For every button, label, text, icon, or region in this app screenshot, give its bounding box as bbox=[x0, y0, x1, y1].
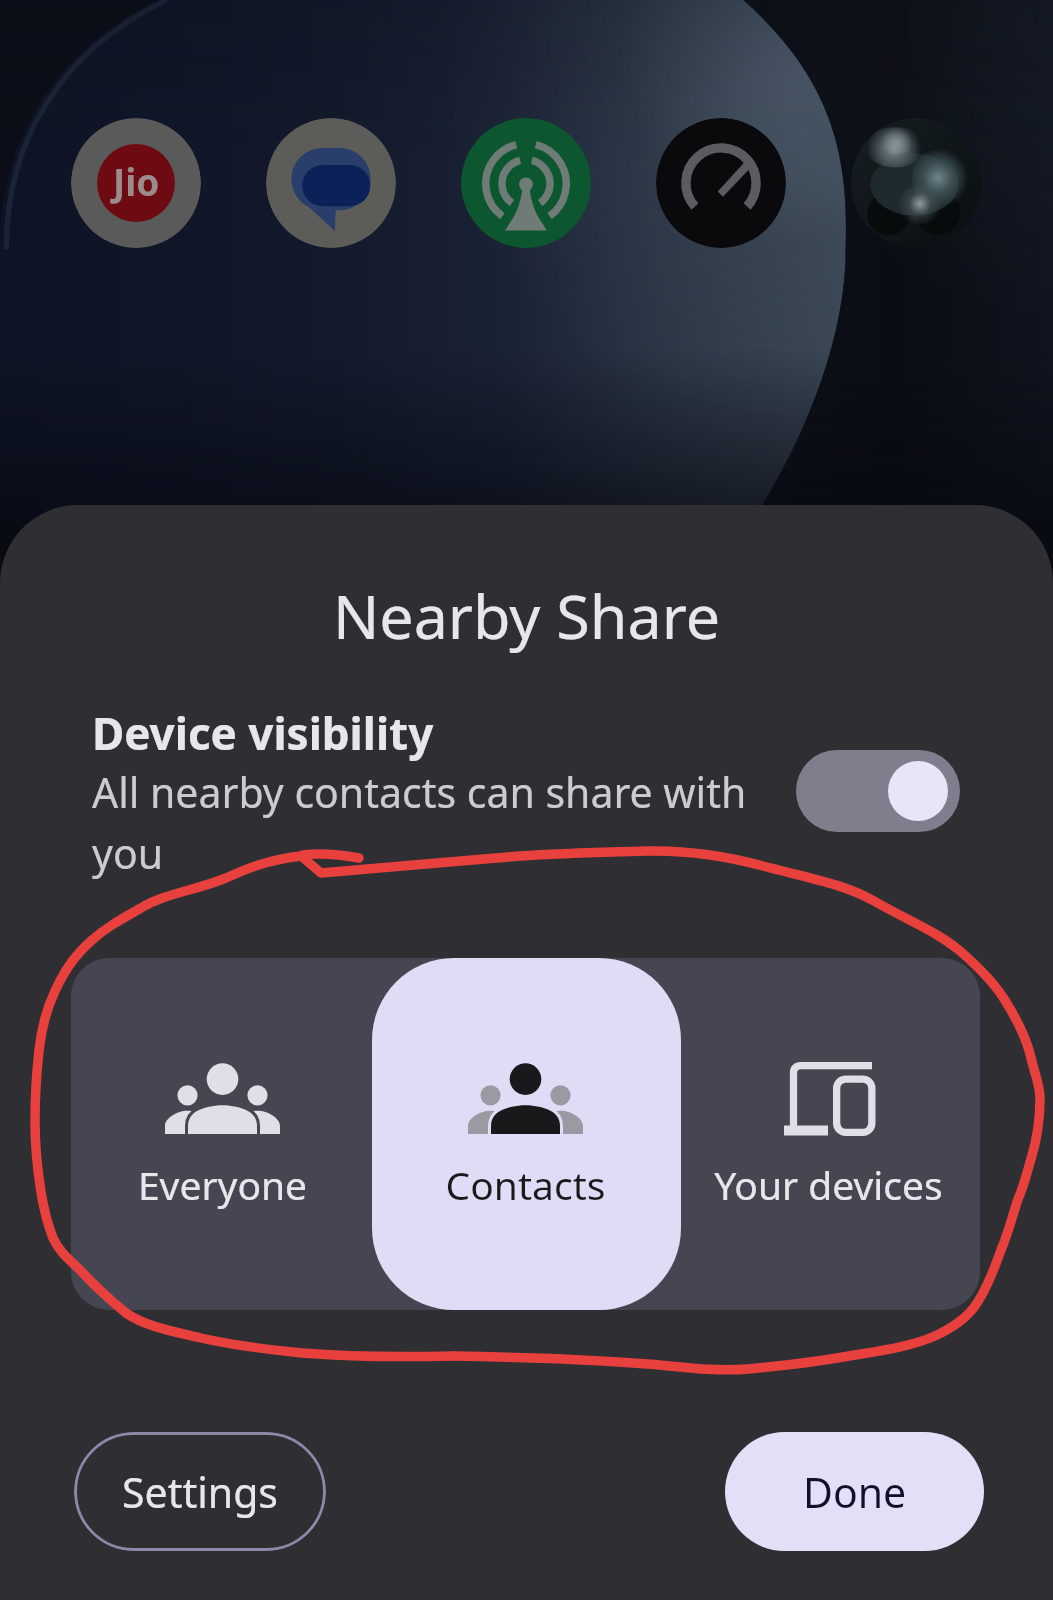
staticText: Device visibility bbox=[92, 703, 434, 763]
staticText: Jio bbox=[113, 156, 160, 206]
staticText: Your devices bbox=[677, 1158, 980, 1211]
staticText: Settings bbox=[122, 1464, 279, 1520]
button[interactable]: Toggle device visibility bbox=[796, 750, 960, 832]
staticText: Done bbox=[803, 1464, 907, 1520]
button[interactable]: MyJio bbox=[71, 118, 201, 248]
button[interactable]: Messages bbox=[266, 118, 396, 248]
staticText: Everyone bbox=[71, 1158, 374, 1211]
button[interactable]: Everyone bbox=[71, 958, 374, 1310]
button[interactable]: Your devices bbox=[677, 958, 980, 1310]
button[interactable]: Contacts bbox=[374, 958, 677, 1310]
staticText: Nearby Share bbox=[0, 574, 1053, 657]
staticText: Contacts bbox=[374, 1158, 677, 1211]
button[interactable]: Photos bbox=[851, 118, 981, 248]
staticText: All nearby contacts can share with you bbox=[92, 764, 772, 881]
button[interactable]: Nearby Share bbox=[461, 118, 591, 248]
button[interactable]: Settings bbox=[74, 1432, 326, 1551]
button[interactable]: Done bbox=[725, 1432, 984, 1551]
button[interactable]: Speedtest bbox=[656, 118, 786, 248]
